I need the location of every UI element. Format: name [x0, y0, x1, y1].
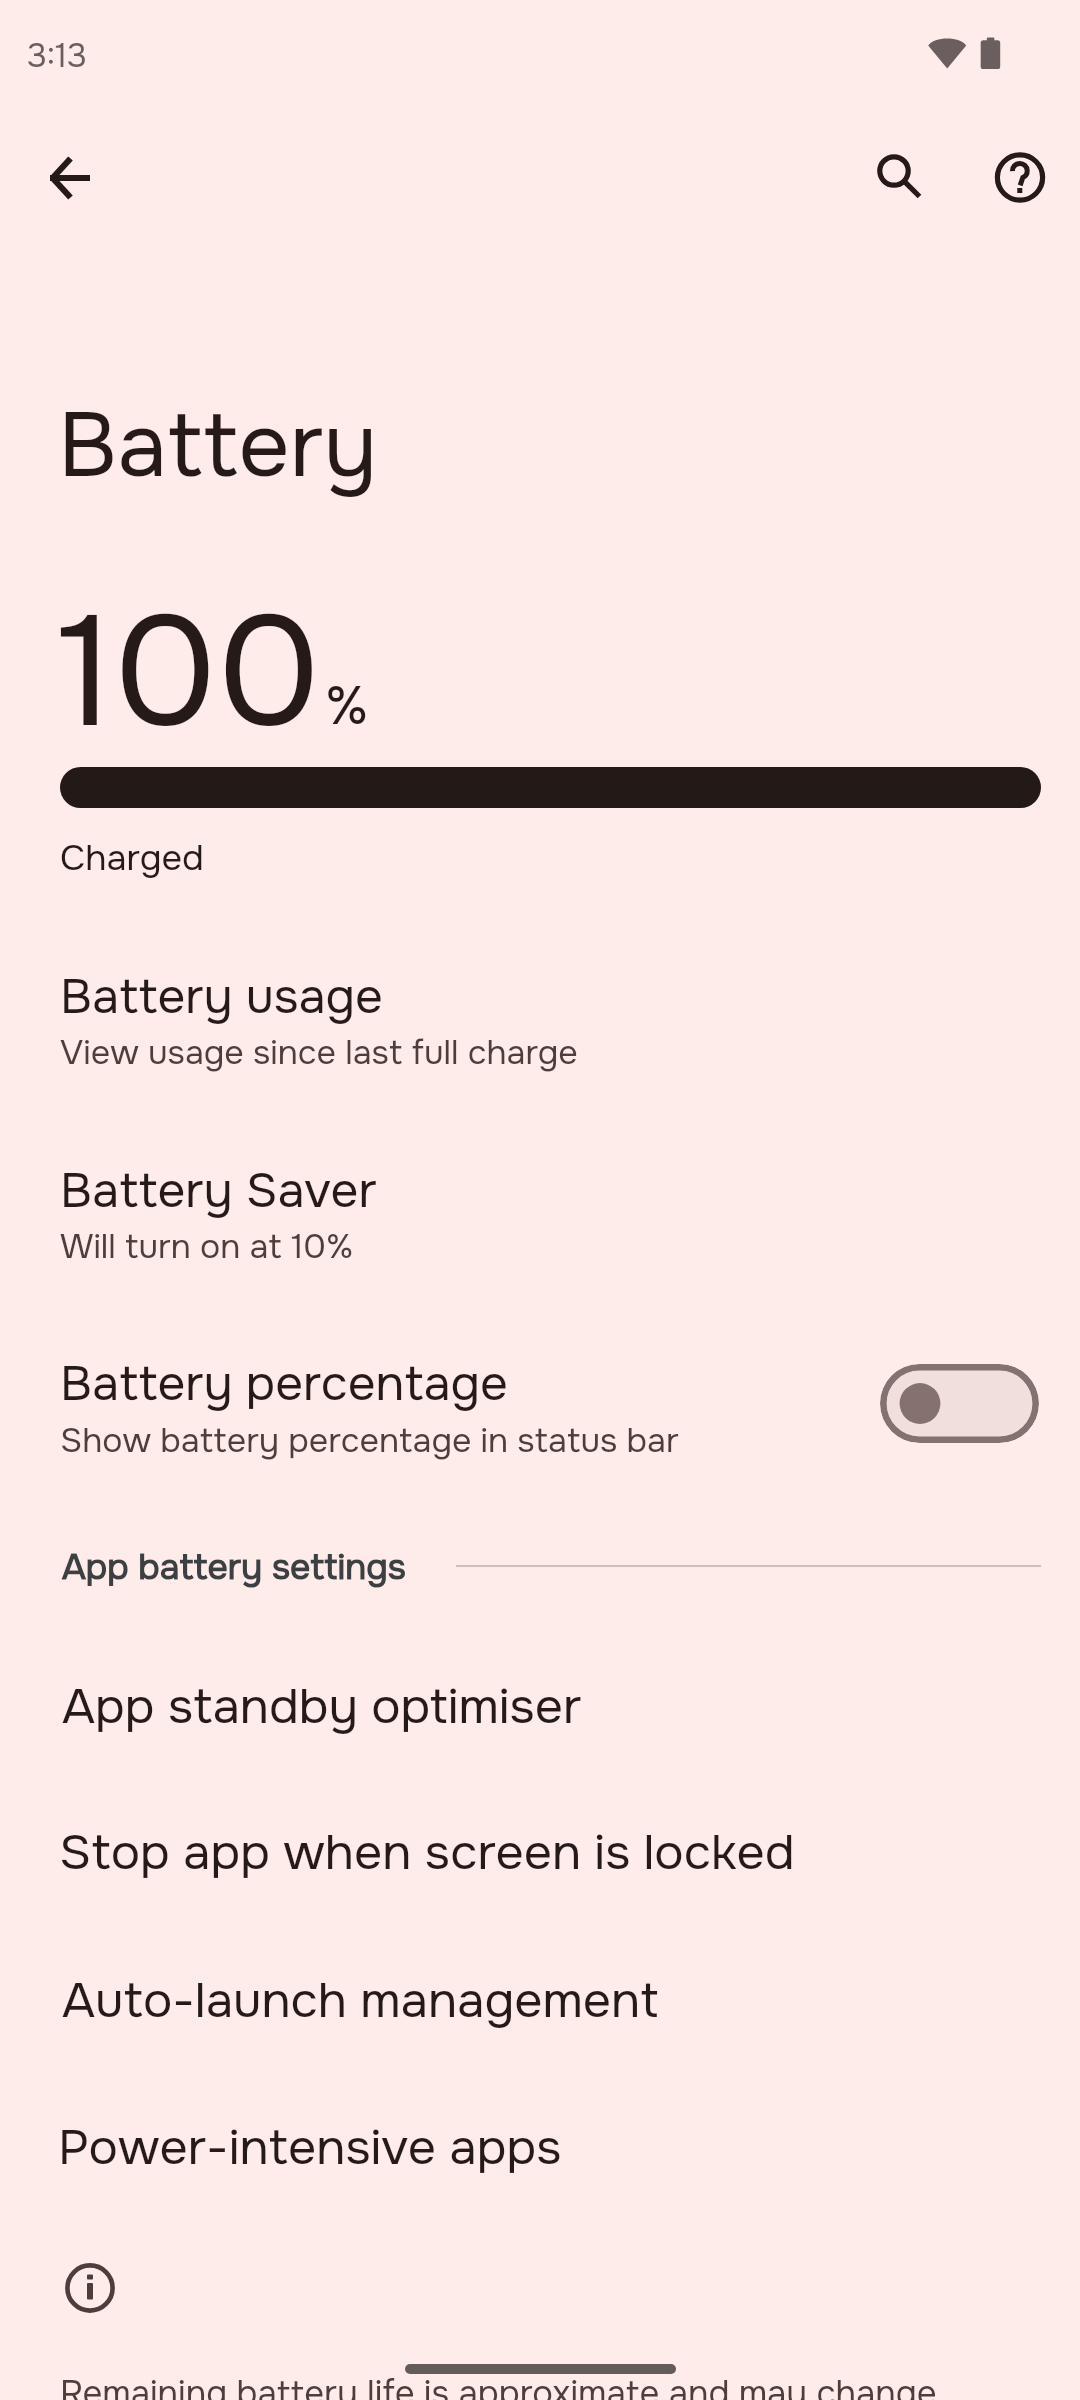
button[interactable] [0, 1793, 1080, 1913]
button[interactable]: Battery percentage toggle [880, 1364, 1039, 1443]
staticText: 3:13 [27, 35, 87, 77]
button[interactable] [0, 2088, 1080, 2208]
button[interactable] [0, 1134, 1080, 1274]
staticText: 100 [57, 574, 321, 773]
button[interactable] [0, 1647, 1080, 1767]
staticText: Show battery percentage in status bar [60, 1419, 679, 1462]
staticText: Auto-launch management [62, 1969, 659, 2032]
staticText: Battery [58, 389, 378, 504]
staticText: Charged [60, 835, 204, 881]
button[interactable] [0, 940, 1080, 1080]
staticText: View usage since last full charge [60, 1031, 578, 1074]
button[interactable]: Search [846, 124, 942, 220]
staticText: % [325, 672, 369, 741]
staticText: App standby optimiser [62, 1675, 582, 1738]
button[interactable]: Back [22, 130, 118, 226]
staticText: Remaining battery life is approximate an… [60, 2371, 937, 2400]
staticText: App battery settings [62, 1545, 406, 1590]
staticText: Battery Saver [60, 1160, 377, 1222]
staticText: Battery percentage [60, 1353, 508, 1415]
button[interactable] [0, 1330, 1080, 1470]
button[interactable] [0, 1941, 1080, 2061]
staticText: Power-intensive apps [58, 2116, 562, 2179]
staticText: Will turn on at 10% [60, 1225, 354, 1268]
staticText: Stop app when screen is locked [59, 1821, 795, 1884]
button[interactable]: Help [972, 130, 1068, 226]
staticText: Battery usage [60, 966, 383, 1028]
